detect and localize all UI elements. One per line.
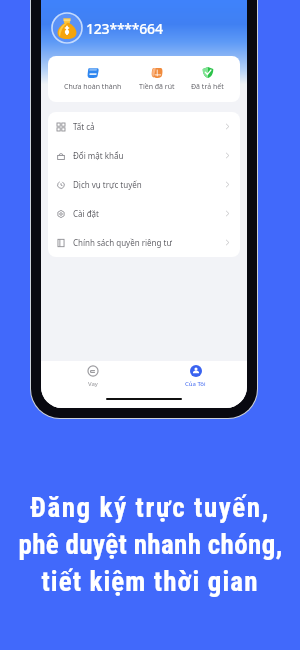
button[interactable]: Đã trả hết: [191, 66, 224, 92]
staticText: Tiền đã rút: [139, 82, 175, 92]
staticText: 123****664: [86, 19, 163, 38]
button[interactable]: Cài đặt: [48, 199, 240, 228]
staticText: Chính sách quyền riêng tư: [73, 237, 172, 248]
staticText: Đăng ký trực tuyến,: [30, 492, 270, 524]
button[interactable]: Vay: [41, 361, 144, 392]
button[interactable]: Chưa hoàn thành: [64, 66, 122, 92]
button[interactable]: Dịch vụ trực tuyến: [48, 170, 240, 199]
staticText: Tất cả: [73, 121, 95, 132]
staticText: tiết kiệm thời gian: [41, 566, 259, 598]
staticText: Đã trả hết: [191, 82, 224, 92]
button[interactable]: Tất cả: [48, 112, 240, 141]
staticText: Vay: [88, 380, 98, 388]
staticText: Chưa hoàn thành: [64, 82, 122, 92]
button[interactable]: Của Tôi: [144, 361, 247, 392]
staticText: Của Tôi: [185, 380, 206, 388]
button[interactable]: Chính sách quyền riêng tư: [48, 228, 240, 257]
staticText: Dịch vụ trực tuyến: [73, 179, 142, 190]
staticText: phê duyệt nhanh chóng,: [18, 529, 283, 561]
staticText: Đổi mật khẩu: [73, 150, 124, 161]
staticText: Cài đặt: [73, 208, 99, 219]
button[interactable]: Đổi mật khẩu: [48, 141, 240, 170]
button[interactable]: Tiền đã rút: [139, 66, 175, 92]
